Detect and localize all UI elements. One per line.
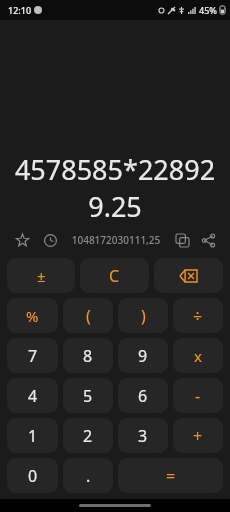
button[interactable]: History [40,230,60,250]
staticText: 8 [83,345,93,367]
button[interactable]: - [173,378,223,413]
staticText: % [26,306,39,326]
button[interactable]: = [118,458,223,493]
staticText: + [193,425,203,447]
button[interactable]: + [173,418,223,453]
staticText: 3 [138,425,148,447]
button[interactable]: ( [63,298,113,333]
staticText: ÷ [193,305,203,327]
button[interactable]: ÷ [173,298,223,333]
staticText: 6 [138,385,148,407]
staticText: 12:10 [8,4,32,16]
button[interactable]: 1 [7,418,58,453]
button[interactable]: Share [198,230,218,250]
staticText: - [195,385,201,407]
button[interactable]: . [63,458,113,493]
staticText: 4578585*228929.25 [8,151,222,225]
staticText: ) [141,305,146,327]
button[interactable]: x [173,338,223,373]
staticText: 5 [83,385,93,407]
button[interactable]: 3 [118,418,168,453]
staticText: 1 [28,425,38,447]
staticText: 0 [28,465,38,487]
button[interactable]: 5 [63,378,113,413]
button[interactable]: 4 [7,378,58,413]
button[interactable]: 0 [7,458,58,493]
staticText: x [194,346,202,366]
button[interactable]: Favorite [12,230,32,250]
button[interactable]: C [80,258,149,293]
button[interactable]: 8 [63,338,113,373]
staticText: C [109,265,120,287]
staticText: ( [86,305,91,327]
button[interactable]: ± [7,258,75,293]
button[interactable]: ) [118,298,168,333]
button[interactable]: Delete [154,258,223,293]
staticText: . [86,465,91,487]
staticText: = [166,465,176,487]
staticText: 1048172030111,25 [60,233,172,247]
staticText: ± [37,266,46,286]
button[interactable]: 6 [118,378,168,413]
button[interactable]: 9 [118,338,168,373]
button[interactable]: 2 [63,418,113,453]
staticText: 4 [28,385,38,407]
button[interactable]: 7 [7,338,58,373]
button[interactable]: % [7,298,58,333]
staticText: 9 [138,345,148,367]
button[interactable]: Copy [172,230,192,250]
staticText: 2 [83,425,93,447]
staticText: 45% [199,4,217,16]
staticText: 7 [28,345,38,367]
